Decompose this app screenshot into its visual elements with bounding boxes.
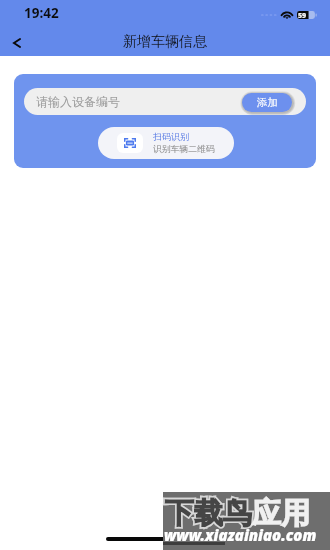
- staticText: 19:42: [24, 4, 59, 22]
- staticText: 应用: [252, 495, 310, 532]
- staticText: 请输入设备编号: [36, 94, 120, 109]
- button[interactable]: 扫码识别: [98, 127, 234, 159]
- staticText: 下载鸟: [165, 495, 252, 532]
- staticText: 59: [298, 11, 307, 19]
- staticText: 新增车辆信息: [123, 33, 207, 51]
- staticText: www.xiazainiao.com: [164, 525, 317, 545]
- button[interactable]: Back: [0, 28, 34, 56]
- staticText: 下载鸟: [165, 495, 252, 532]
- staticText: 识别车辆二维码: [153, 144, 215, 155]
- staticText: 添加: [257, 96, 278, 109]
- button[interactable]: 添加: [242, 93, 292, 112]
- staticText: 扫码识别: [153, 131, 189, 142]
- staticText: 59: [298, 11, 307, 19]
